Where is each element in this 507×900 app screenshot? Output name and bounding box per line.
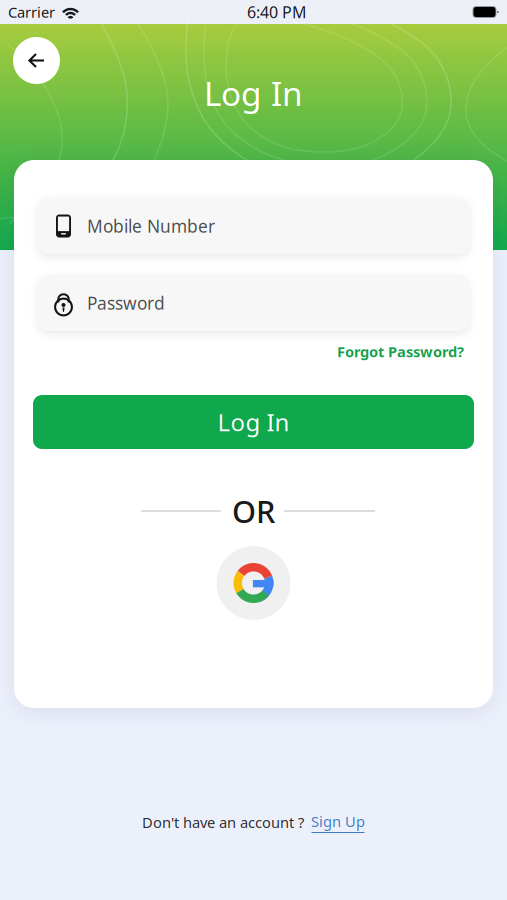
staticText: Log In	[204, 71, 303, 115]
staticText: Password	[87, 291, 165, 314]
staticText: Forgot Password?	[337, 342, 464, 361]
staticText: Sign Up	[311, 811, 365, 831]
button[interactable]: Sign Up	[311, 811, 365, 833]
staticText: 6:40 PM	[247, 1, 307, 23]
staticText: Mobile Number	[87, 214, 215, 237]
staticText: OR	[232, 491, 275, 531]
button[interactable]: Forgot Password?	[33, 342, 474, 361]
staticText: Carrier	[8, 2, 55, 22]
staticText: Don't have an account ?	[142, 812, 304, 832]
button[interactable]: Sign in with Google	[216, 546, 290, 620]
button[interactable]: Log In	[33, 395, 474, 449]
staticText: Log In	[217, 406, 289, 438]
button[interactable]: Back	[13, 37, 60, 84]
